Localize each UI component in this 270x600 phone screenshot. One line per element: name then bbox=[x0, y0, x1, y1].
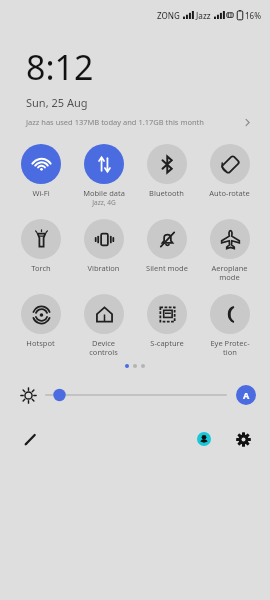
button[interactable]: Mobile data bbox=[72, 143, 135, 208]
staticText: Wi-Fi bbox=[32, 188, 50, 198]
staticText: Mobile data bbox=[83, 188, 125, 198]
button[interactable]: Jazz has used 137MB today and 1.17GB thi… bbox=[26, 117, 252, 127]
staticText: 8:12 bbox=[26, 44, 94, 90]
staticText: S-capture bbox=[150, 338, 184, 348]
staticText: Jazz bbox=[196, 10, 211, 21]
button[interactable]: S-capture bbox=[135, 293, 198, 349]
staticText: Auto-rotate bbox=[209, 188, 250, 198]
staticText: Aeroplane mode bbox=[211, 263, 248, 282]
staticText: Device controls bbox=[89, 338, 118, 357]
staticText: ZONG bbox=[157, 10, 180, 21]
button[interactable]: User profile bbox=[194, 429, 214, 449]
button[interactable]: Settings bbox=[232, 428, 254, 450]
staticText: Hotspot bbox=[26, 338, 55, 348]
button[interactable]: Eye Protec- tion bbox=[198, 293, 261, 358]
staticText: Jazz, 4G bbox=[92, 198, 116, 207]
button[interactable]: Aeroplane mode bbox=[198, 218, 261, 283]
button[interactable]: Bluetooth bbox=[135, 143, 198, 199]
staticText: Silent mode bbox=[146, 263, 188, 273]
staticText: 16% bbox=[245, 10, 261, 21]
staticText: Jazz has used 137MB today and 1.17GB thi… bbox=[26, 117, 204, 127]
button[interactable]: Edit bbox=[20, 429, 40, 449]
button[interactable]: Device controls bbox=[72, 293, 135, 358]
button[interactable]: Auto-rotate bbox=[198, 143, 261, 199]
button[interactable]: Auto brightness bbox=[236, 385, 256, 405]
staticText: Sun, 25 Aug bbox=[26, 95, 88, 110]
button[interactable]: Wi-Fi bbox=[9, 143, 72, 199]
staticText: A bbox=[243, 389, 250, 401]
button[interactable]: Hotspot bbox=[9, 293, 72, 349]
staticText: Bluetooth bbox=[149, 188, 184, 198]
button[interactable] bbox=[46, 384, 226, 406]
button[interactable]: Silent mode bbox=[135, 218, 198, 274]
staticText: Vibration bbox=[87, 263, 120, 273]
button[interactable]: Vibration bbox=[72, 218, 135, 274]
button[interactable]: Torch bbox=[9, 218, 72, 274]
staticText: Eye Protec- tion bbox=[210, 338, 250, 357]
staticText: Torch bbox=[31, 263, 51, 273]
